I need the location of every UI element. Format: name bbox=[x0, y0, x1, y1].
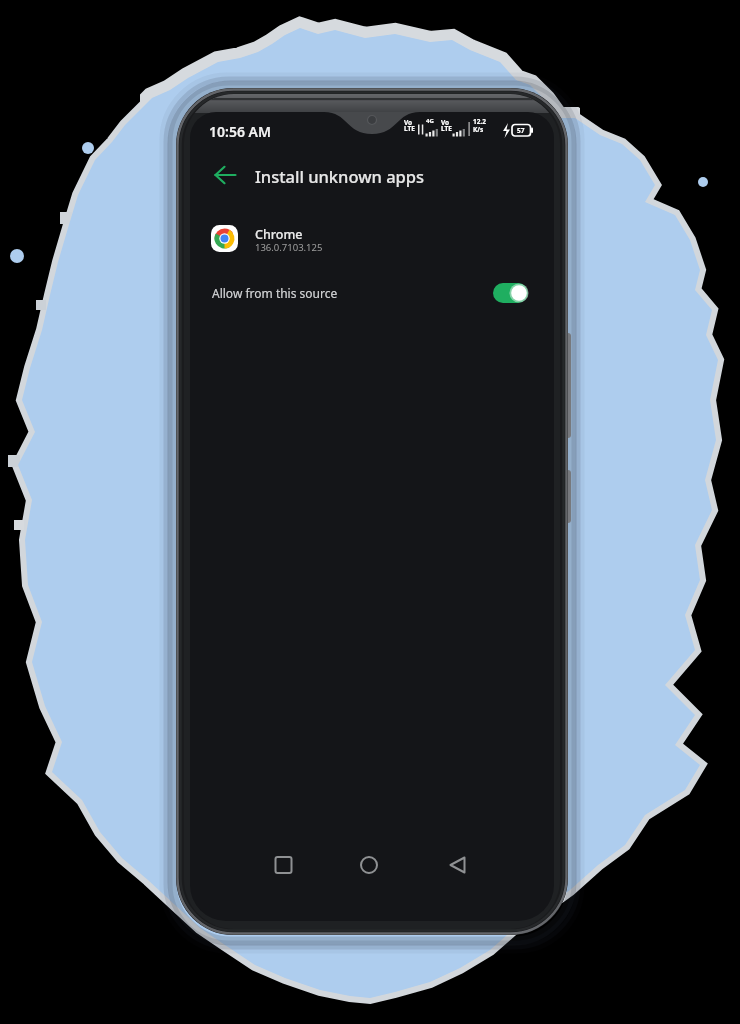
staticText: 4G bbox=[426, 117, 434, 125]
staticText: 136.0.7103.125 bbox=[255, 241, 323, 254]
staticText: 10:56 AM bbox=[209, 122, 271, 141]
staticText: 12.2 K/s bbox=[473, 117, 486, 134]
staticText: Chrome bbox=[255, 226, 303, 243]
staticText: Vo LTE bbox=[404, 118, 415, 133]
button[interactable]: Install unknown apps bbox=[255, 165, 425, 187]
staticText: 57 bbox=[517, 126, 525, 135]
button[interactable] bbox=[440, 847, 476, 883]
staticText: Allow from this source bbox=[212, 285, 338, 301]
button[interactable]: Allow from this source bbox=[205, 278, 535, 308]
button[interactable]: Chrome bbox=[205, 220, 535, 260]
staticText: Vo LTE bbox=[441, 118, 452, 133]
button[interactable] bbox=[351, 847, 387, 883]
button[interactable] bbox=[265, 847, 301, 883]
button[interactable] bbox=[206, 160, 246, 190]
